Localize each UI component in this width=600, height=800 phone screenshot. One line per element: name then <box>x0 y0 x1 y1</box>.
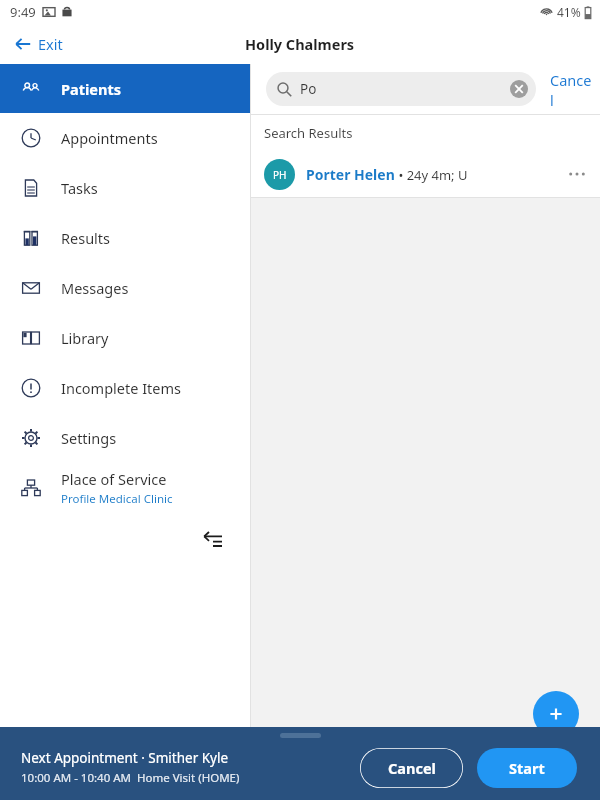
button[interactable]: Cancel <box>544 64 600 114</box>
button[interactable]: Place of Service <box>0 463 250 513</box>
staticText: PH <box>273 168 287 182</box>
button[interactable]: Messages <box>0 263 250 313</box>
button[interactable]: Library <box>0 313 250 363</box>
staticText: Search Results <box>264 124 353 142</box>
button[interactable]: Po <box>266 72 536 106</box>
staticText: Holly Chalmers <box>245 34 355 54</box>
staticText: Tasks <box>61 178 98 198</box>
button[interactable]: Settings <box>0 413 250 463</box>
button[interactable]: Appointments <box>0 113 250 163</box>
button[interactable]: Add <box>533 691 579 737</box>
staticText: Next Appointment · Smither Kyle <box>21 749 229 767</box>
button[interactable]: Cancel <box>360 748 463 788</box>
staticText: Porter Helen <box>306 165 395 184</box>
button[interactable]: PH <box>251 151 600 197</box>
staticText: Exit <box>38 34 63 54</box>
staticText: Cancel <box>388 758 436 778</box>
staticText: Library <box>61 328 109 348</box>
button[interactable]: Exit <box>10 30 67 58</box>
button[interactable]: Tasks <box>0 163 250 213</box>
button[interactable]: Clear search <box>506 76 532 102</box>
staticText: Messages <box>61 278 129 298</box>
staticText: 9:49 <box>10 3 36 21</box>
staticText: • 24y 4m; U <box>395 166 468 184</box>
staticText: 41% <box>557 4 581 20</box>
staticText: Incomplete Items <box>61 378 182 398</box>
staticText: 10:00 AM - 10:40 AM Home Visit (HOME) <box>21 770 240 786</box>
button[interactable]: Start <box>477 748 577 788</box>
staticText: Profile Medical Clinic <box>61 491 173 507</box>
staticText: Patients <box>61 79 121 99</box>
button[interactable]: Patients <box>0 64 250 113</box>
staticText: Appointments <box>61 128 158 148</box>
staticText: Start <box>509 758 545 778</box>
button[interactable]: Results <box>0 213 250 263</box>
button[interactable]: Incomplete Items <box>0 363 250 413</box>
button[interactable]: Collapse menu <box>196 521 230 555</box>
staticText: Settings <box>61 428 117 448</box>
button[interactable]: More options <box>560 157 594 191</box>
staticText: Cancel <box>550 70 594 108</box>
staticText: Place of Service <box>61 469 167 489</box>
staticText: Po <box>300 80 317 98</box>
staticText: Results <box>61 228 111 248</box>
